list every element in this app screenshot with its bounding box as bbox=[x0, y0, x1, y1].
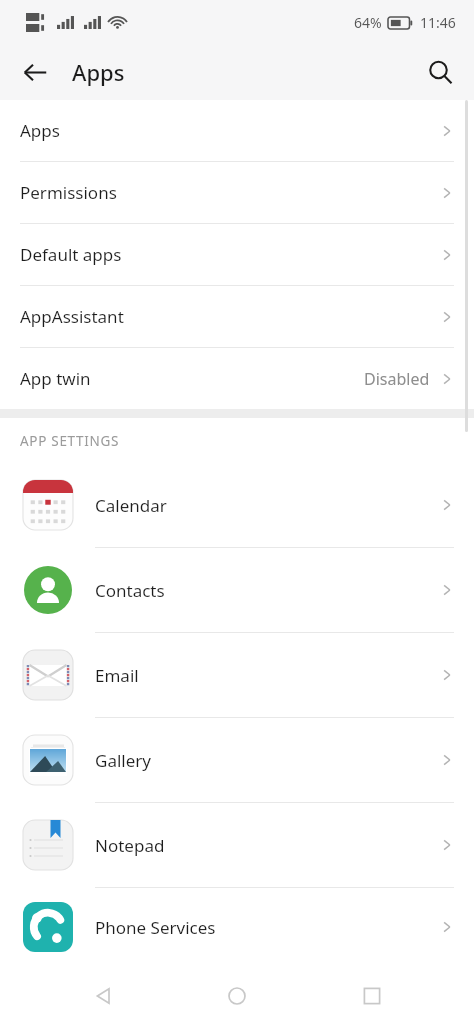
staticText: 64% bbox=[354, 13, 382, 32]
staticText: Apps bbox=[20, 119, 60, 142]
staticText: AppAssistant bbox=[20, 305, 124, 328]
button[interactable]: Gallery bbox=[0, 718, 474, 802]
staticText: App twin bbox=[20, 367, 91, 390]
button[interactable]: Back bbox=[71, 966, 135, 1026]
staticText: Default apps bbox=[20, 243, 122, 266]
staticText: Notepad bbox=[95, 834, 165, 857]
staticText: Gallery bbox=[95, 749, 151, 772]
staticText: APP SETTINGS bbox=[20, 432, 120, 450]
staticText: Phone Services bbox=[95, 916, 216, 939]
button[interactable]: Search bbox=[416, 48, 464, 96]
staticText: Permissions bbox=[20, 181, 117, 204]
button[interactable]: Recent apps bbox=[340, 966, 404, 1026]
staticText: Disabled bbox=[364, 368, 430, 390]
button[interactable]: Calendar bbox=[0, 463, 474, 547]
staticText: Calendar bbox=[95, 494, 167, 517]
button[interactable]: Permissions bbox=[0, 162, 474, 223]
button[interactable]: Apps bbox=[0, 100, 474, 161]
button[interactable]: Default apps bbox=[0, 224, 474, 285]
button[interactable]: App twin bbox=[0, 348, 474, 409]
button[interactable]: Back bbox=[11, 48, 59, 96]
staticText: Contacts bbox=[95, 579, 165, 602]
button[interactable]: Home bbox=[205, 966, 269, 1026]
button[interactable]: Notepad bbox=[0, 803, 474, 887]
staticText: Apps bbox=[72, 57, 125, 87]
staticText: 11:46 bbox=[420, 13, 456, 32]
button[interactable]: Contacts bbox=[0, 548, 474, 632]
staticText: Email bbox=[95, 664, 139, 687]
button[interactable]: Phone Services bbox=[0, 888, 474, 966]
button[interactable]: AppAssistant bbox=[0, 286, 474, 347]
button[interactable]: Email bbox=[0, 633, 474, 717]
